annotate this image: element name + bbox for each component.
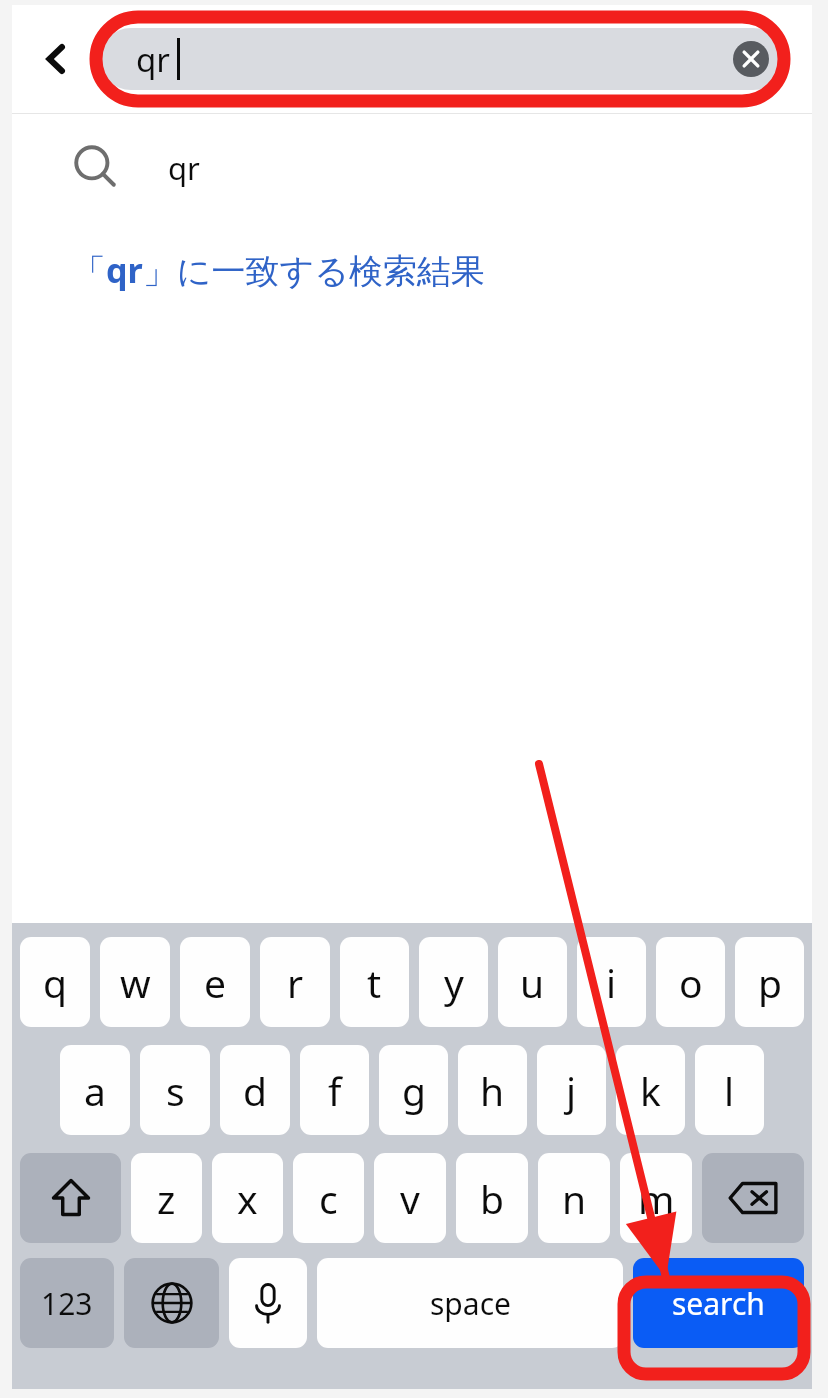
button[interactable]: Backspace	[702, 1153, 804, 1243]
button[interactable]: 123	[20, 1258, 114, 1348]
staticText: w	[120, 956, 151, 1009]
staticText: 「qr」に一致する検索結果	[72, 247, 486, 293]
staticText: search	[672, 1283, 765, 1324]
staticText: b	[480, 1172, 504, 1225]
staticText: e	[204, 956, 226, 1009]
button[interactable]: b	[456, 1153, 528, 1243]
staticText: g	[402, 1064, 426, 1117]
staticText: z	[157, 1172, 176, 1225]
button[interactable]: t	[340, 937, 409, 1027]
button[interactable]: h	[458, 1045, 527, 1135]
button[interactable]: m	[620, 1153, 692, 1243]
button[interactable]: o	[656, 937, 725, 1027]
button[interactable]: s	[140, 1045, 210, 1135]
button[interactable]: qr	[100, 28, 784, 90]
staticText: x	[237, 1172, 258, 1225]
button[interactable]: Voice input	[229, 1258, 307, 1348]
staticText: k	[640, 1064, 661, 1117]
staticText: r	[287, 956, 304, 1009]
staticText: h	[480, 1064, 505, 1117]
button[interactable]: d	[220, 1045, 290, 1135]
staticText: d	[243, 1064, 267, 1117]
staticText: qr	[168, 147, 200, 189]
staticText: 123	[41, 1283, 93, 1324]
staticText: p	[758, 956, 782, 1009]
button[interactable]: a	[60, 1045, 130, 1135]
staticText: q	[43, 956, 67, 1009]
button[interactable]: qr	[12, 114, 812, 222]
staticText: v	[400, 1172, 420, 1225]
staticText: c	[319, 1172, 338, 1225]
button[interactable]: p	[735, 937, 804, 1027]
button[interactable]: 「qr」に一致する検索結果	[12, 222, 812, 318]
staticText: l	[724, 1064, 735, 1117]
button[interactable]: u	[498, 937, 567, 1027]
button[interactable]: space	[317, 1258, 623, 1348]
staticText: s	[166, 1064, 185, 1117]
staticText: u	[520, 956, 545, 1009]
button[interactable]: Shift	[20, 1153, 121, 1243]
button[interactable]: y	[419, 937, 488, 1027]
button[interactable]: n	[538, 1153, 610, 1243]
button[interactable]: g	[379, 1045, 448, 1135]
staticText: f	[328, 1064, 342, 1117]
staticText: qr	[136, 37, 170, 82]
staticText: t	[367, 956, 382, 1009]
button[interactable]: c	[293, 1153, 364, 1243]
staticText: n	[562, 1172, 587, 1225]
button[interactable]: k	[616, 1045, 685, 1135]
button[interactable]: Change keyboard language	[124, 1258, 219, 1348]
button[interactable]: q	[20, 937, 90, 1027]
button[interactable]: x	[212, 1153, 283, 1243]
staticText: o	[679, 956, 703, 1009]
staticText: i	[606, 956, 617, 1009]
staticText: m	[638, 1172, 675, 1225]
button[interactable]: Clear text	[726, 34, 776, 84]
button[interactable]: f	[300, 1045, 369, 1135]
staticText: space	[430, 1283, 511, 1324]
staticText: y	[444, 956, 464, 1009]
button[interactable]: e	[180, 937, 250, 1027]
button[interactable]: z	[131, 1153, 202, 1243]
button[interactable]: search	[633, 1258, 804, 1348]
button[interactable]: Back	[12, 5, 100, 113]
staticText: a	[84, 1064, 106, 1117]
button[interactable]: w	[100, 937, 170, 1027]
button[interactable]: v	[374, 1153, 446, 1243]
button[interactable]: r	[260, 937, 330, 1027]
button[interactable]: j	[537, 1045, 606, 1135]
button[interactable]: i	[577, 937, 646, 1027]
button[interactable]: l	[695, 1045, 764, 1135]
staticText: j	[566, 1064, 577, 1117]
